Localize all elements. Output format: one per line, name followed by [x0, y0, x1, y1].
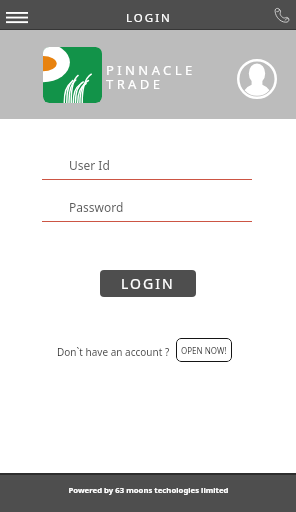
button[interactable]: Don`t have an account ? — [57, 345, 170, 359]
staticText: PINNACLE — [106, 61, 196, 79]
staticText: LOGIN — [126, 10, 172, 26]
staticText: Powered by 63 moons techologies limited — [68, 485, 229, 496]
button[interactable]: Profile — [237, 59, 277, 99]
button[interactable]: Menu — [0, 0, 36, 29]
staticText: LOGIN — [121, 274, 175, 293]
button[interactable]: User Id — [42, 152, 252, 180]
button[interactable]: Password — [42, 194, 252, 222]
button[interactable]: LOGIN — [100, 270, 196, 297]
staticText: TRADE — [106, 75, 164, 93]
staticText: OPEN NOW! — [181, 345, 227, 356]
button[interactable]: Call — [267, 0, 296, 29]
staticText: Don`t have an account ? — [57, 345, 170, 359]
staticText: User Id — [69, 157, 110, 173]
button[interactable]: OPEN NOW! — [176, 338, 232, 362]
staticText: Password — [69, 199, 124, 215]
